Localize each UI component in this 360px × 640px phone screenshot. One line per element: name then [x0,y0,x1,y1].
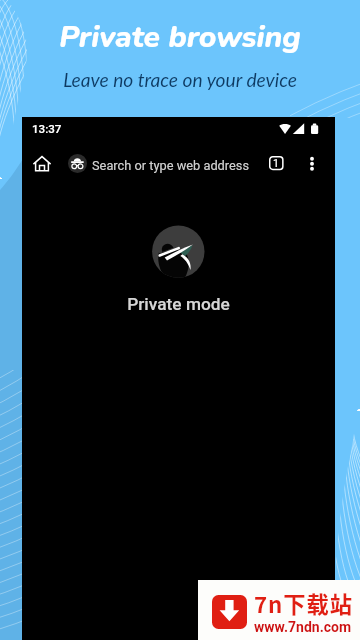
button[interactable]: Tabs [269,156,284,170]
staticText: 13:37 [32,122,62,136]
button[interactable]: Incognito [68,154,87,173]
staticText: Private browsing [0,17,360,58]
button[interactable]: Download [212,595,247,629]
staticText: 7n下载站 [254,587,353,619]
staticText: Leave no trace on your device [0,68,360,91]
staticText: 1 [273,157,279,169]
staticText: Search or type web address [92,158,250,173]
staticText: www.7ndn.com [254,619,352,635]
button[interactable]: More options [302,149,322,179]
button[interactable]: Home [28,150,56,178]
staticText: Private mode [22,294,335,314]
